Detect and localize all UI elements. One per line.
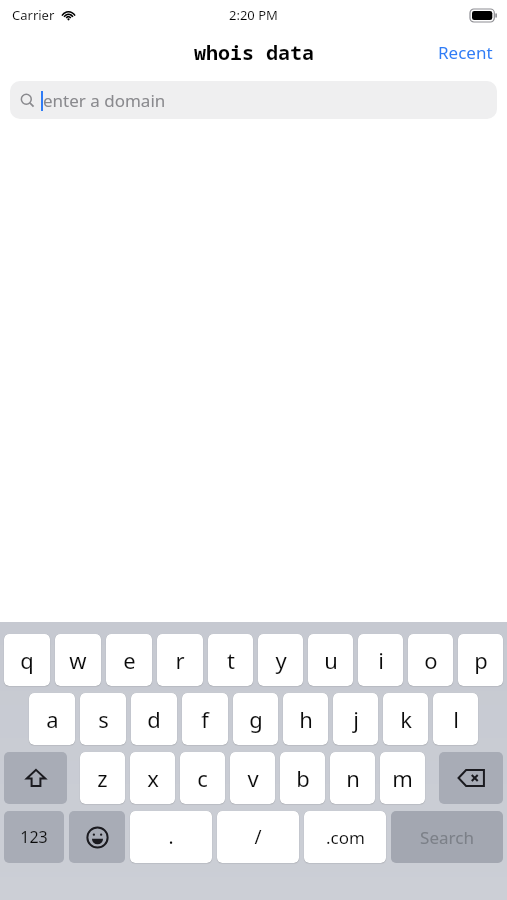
staticText: Carrier	[12, 6, 55, 24]
button[interactable]: y	[258, 634, 303, 686]
staticText: h	[299, 704, 313, 734]
staticText: s	[98, 704, 109, 734]
staticText: n	[346, 763, 360, 793]
button[interactable]: o	[408, 634, 453, 686]
staticText: 2:20 PM	[229, 6, 278, 24]
button[interactable]: b	[280, 752, 325, 804]
staticText: d	[147, 704, 161, 734]
button[interactable]: z	[80, 752, 125, 804]
staticText: i	[378, 645, 384, 675]
staticText: f	[201, 704, 209, 734]
button[interactable]: f	[182, 693, 228, 745]
staticText: t	[227, 645, 235, 675]
staticText: v	[247, 763, 259, 793]
staticText: c	[197, 763, 208, 793]
button[interactable]: l	[433, 693, 478, 745]
button[interactable]: p	[458, 634, 503, 686]
staticText: b	[296, 763, 310, 793]
staticText: 123	[20, 826, 48, 848]
button[interactable]: Backspace	[439, 752, 503, 804]
button[interactable]: d	[131, 693, 177, 745]
button[interactable]: k	[383, 693, 428, 745]
button[interactable]: g	[233, 693, 278, 745]
staticText: p	[474, 645, 488, 675]
staticText: enter a domain	[43, 89, 166, 112]
button[interactable]: u	[308, 634, 353, 686]
staticText: q	[20, 645, 34, 675]
button[interactable]: h	[283, 693, 328, 745]
button[interactable]: 123	[4, 811, 64, 863]
staticText: .com	[326, 826, 365, 849]
staticText: m	[392, 763, 413, 793]
staticText: whois data	[194, 39, 314, 66]
staticText: /	[254, 824, 262, 850]
staticText: j	[353, 704, 359, 734]
button[interactable]: s	[80, 693, 126, 745]
button[interactable]: n	[330, 752, 375, 804]
button[interactable]: v	[230, 752, 275, 804]
button[interactable]: w	[55, 634, 101, 686]
button[interactable]: .	[130, 811, 212, 863]
staticText: Search	[420, 826, 474, 849]
button[interactable]: Search	[391, 811, 503, 863]
staticText: Recent	[438, 41, 493, 64]
staticText: r	[175, 645, 185, 675]
button[interactable]: Shift	[4, 752, 67, 804]
staticText: k	[400, 704, 412, 734]
button[interactable]: a	[29, 693, 75, 745]
button[interactable]: i	[358, 634, 403, 686]
button[interactable]: .com	[304, 811, 386, 863]
button[interactable]: Recent	[424, 35, 507, 70]
button[interactable]: r	[157, 634, 203, 686]
button[interactable]: c	[180, 752, 225, 804]
staticText: e	[123, 645, 136, 675]
staticText: .	[168, 824, 174, 850]
button[interactable]: t	[208, 634, 253, 686]
button[interactable]: m	[380, 752, 425, 804]
button[interactable]: enter a domain	[10, 81, 497, 119]
staticText: x	[147, 763, 159, 793]
button[interactable]: Emoji keyboard	[69, 811, 125, 863]
staticText: u	[324, 645, 338, 675]
button[interactable]: e	[106, 634, 152, 686]
staticText: o	[424, 645, 438, 675]
button[interactable]: x	[130, 752, 175, 804]
staticText: a	[46, 704, 59, 734]
button[interactable]: /	[217, 811, 299, 863]
staticText: w	[69, 645, 87, 675]
button[interactable]: q	[4, 634, 50, 686]
button[interactable]: j	[333, 693, 378, 745]
staticText: y	[275, 645, 287, 675]
staticText: g	[249, 704, 263, 734]
staticText: l	[453, 704, 459, 734]
staticText: z	[97, 763, 108, 793]
